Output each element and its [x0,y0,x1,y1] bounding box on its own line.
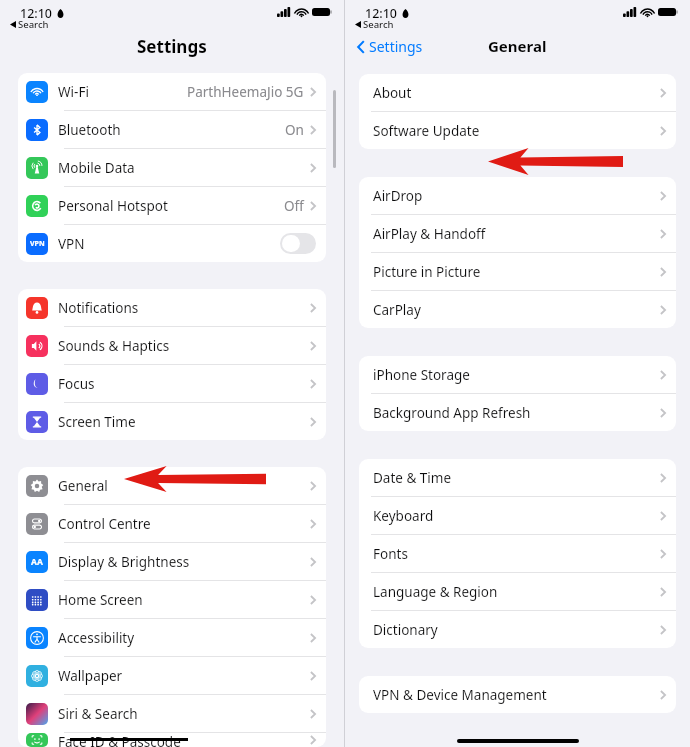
staticText: Language & Region [373,583,498,601]
staticText: CarPlay [373,301,421,319]
button[interactable]: Personal Hotspot [18,187,326,225]
staticText: VPN & Device Management [373,686,547,704]
staticText: Display & Brightness [58,553,190,571]
button[interactable]: Accessibility [18,619,326,657]
staticText: 12:10 [20,5,53,22]
staticText: Control Centre [58,515,151,533]
staticText: Off [284,197,304,215]
button[interactable]: iPhone Storage [359,356,676,394]
staticText: Face ID & Passcode [58,733,181,747]
staticText: On [285,121,304,139]
staticText: AirDrop [373,187,423,205]
button[interactable]: Face ID & Passcode [18,733,326,747]
staticText: About [373,84,412,102]
button[interactable]: Notifications [18,289,326,327]
button[interactable]: General [18,467,326,505]
button[interactable]: Home Screen [18,581,326,619]
staticText: Keyboard [373,507,434,525]
button[interactable]: Focus [18,365,326,403]
staticText: Date & Time [373,469,452,487]
staticText: Notifications [58,299,139,317]
button[interactable]: VPN & Device Management [359,676,676,713]
staticText: General [488,36,547,56]
staticText: Picture in Picture [373,263,481,281]
staticText: Settings [137,35,207,58]
button[interactable]: CarPlay [359,291,676,328]
staticText: Settings [369,37,423,56]
button[interactable]: Wi-Fi [18,73,326,111]
staticText: VPN [30,239,45,249]
staticText: Fonts [373,545,408,563]
staticText: Mobile Data [58,159,135,177]
staticText: 12:10 [365,5,398,22]
button[interactable]: Mobile Data [18,149,326,187]
staticText: Siri & Search [58,705,138,723]
staticText: Background App Refresh [373,404,531,422]
button[interactable]: Sounds & Haptics [18,327,326,365]
staticText: Focus [58,375,95,393]
button[interactable]: Siri & Search [18,695,326,733]
staticText: Dictionary [373,621,438,639]
button[interactable]: Bluetooth [18,111,326,149]
button[interactable]: Language & Region [359,573,676,611]
staticText: Bluetooth [58,121,121,139]
button[interactable]: Keyboard [359,497,676,535]
staticText: Accessibility [58,629,135,647]
staticText: ParthHeemaJio 5G [187,83,304,101]
staticText: General [58,477,108,495]
staticText: Home Screen [58,591,143,609]
staticText: Search [18,18,49,30]
button[interactable]: Dictionary [359,611,676,648]
button[interactable]: Background App Refresh [359,394,676,431]
button[interactable]: About [359,74,676,112]
button[interactable]: Software Update [359,112,676,149]
staticText: Screen Time [58,413,136,431]
button[interactable]: Fonts [359,535,676,573]
button[interactable]: Wallpaper [18,657,326,695]
staticText: AirPlay & Handoff [373,225,486,243]
staticText: Search [363,18,394,30]
staticText: VPN [58,235,85,253]
staticText: Personal Hotspot [58,197,168,215]
button[interactable]: AA [18,543,326,581]
button[interactable]: Settings [357,37,423,56]
staticText: Wallpaper [58,667,123,685]
button[interactable]: Date & Time [359,459,676,497]
staticText: Wi-Fi [58,83,89,101]
button[interactable]: Control Centre [18,505,326,543]
staticText: Sounds & Haptics [58,337,170,355]
staticText: iPhone Storage [373,366,470,384]
button[interactable]: AirPlay & Handoff [359,215,676,253]
staticText: Software Update [373,122,480,140]
button[interactable]: AirDrop [359,177,676,215]
button[interactable]: VPN [18,225,326,262]
button[interactable]: Screen Time [18,403,326,440]
staticText: AA [31,556,43,568]
button[interactable]: Picture in Picture [359,253,676,291]
